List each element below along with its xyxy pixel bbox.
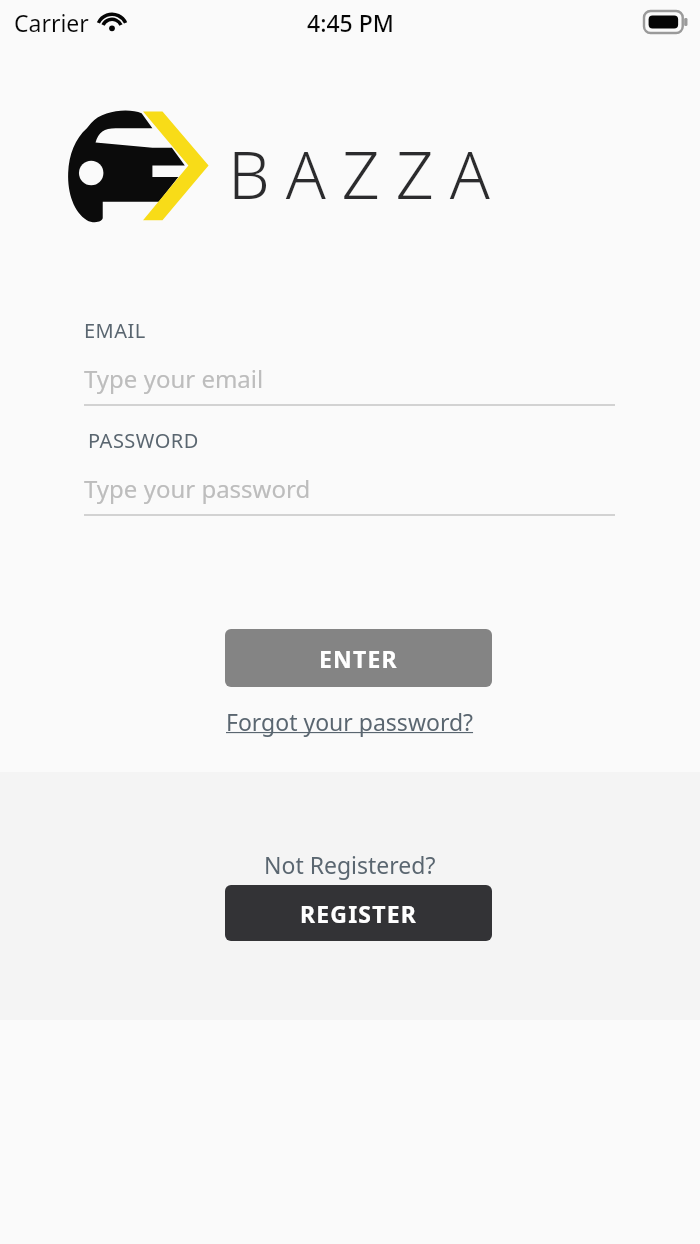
staticText: REGISTER: [300, 898, 418, 929]
staticText: EMAIL: [84, 317, 146, 344]
button[interactable]: Type your email: [84, 350, 615, 406]
staticText: ENTER: [319, 643, 398, 674]
staticText: Forgot your password?: [226, 706, 474, 737]
button[interactable]: Forgot your password?: [216, 702, 484, 740]
staticText: Type your password: [84, 472, 311, 505]
staticText: Carrier: [14, 7, 89, 38]
staticText: Type your email: [84, 362, 264, 395]
staticText: Not Registered?: [264, 849, 436, 880]
staticText: PASSWORD: [88, 427, 199, 454]
staticText: 4:45 PM: [307, 7, 394, 38]
staticText: BAZZA: [228, 128, 506, 218]
other: Battery full: [644, 11, 688, 33]
button[interactable]: ENTER: [225, 629, 492, 687]
button[interactable]: REGISTER: [225, 885, 492, 941]
button[interactable]: Type your password: [84, 460, 615, 516]
other: Wi-Fi signal: [97, 10, 127, 34]
